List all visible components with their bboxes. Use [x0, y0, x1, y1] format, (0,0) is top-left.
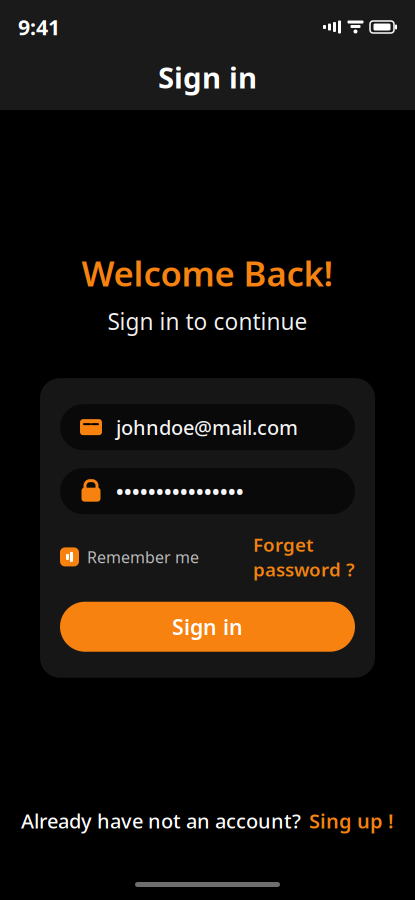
staticText: johndoe@mail.com	[116, 414, 298, 440]
button[interactable]: Remember me	[60, 546, 199, 567]
staticText: Welcome Back!	[81, 250, 333, 296]
staticText: Sign in	[158, 57, 257, 96]
staticText: 9:41	[18, 13, 60, 41]
button[interactable]: Forget password ?	[253, 532, 355, 582]
button[interactable]: Sing up !	[309, 807, 394, 834]
staticText: Forget password ?	[253, 532, 355, 582]
staticText: ••••••••••••••••	[116, 478, 244, 504]
staticText: Sing up !	[309, 807, 394, 834]
staticText: Sign in	[172, 613, 243, 641]
staticText: Remember me	[87, 546, 199, 567]
staticText: Sign in to continue	[107, 306, 307, 336]
staticText: Already have not an account?	[21, 807, 301, 834]
button[interactable]: Sign in	[60, 602, 355, 652]
